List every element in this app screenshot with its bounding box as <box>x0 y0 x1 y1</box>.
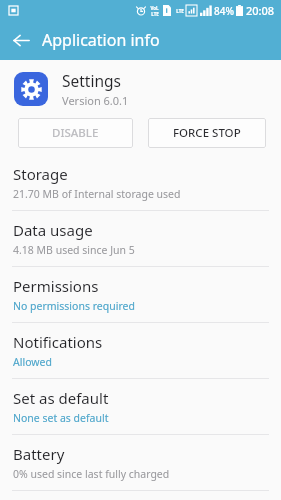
button[interactable]: Data usage <box>0 211 281 266</box>
staticText: Version 6.0.1 <box>62 93 129 108</box>
staticText: No permissions required <box>13 299 135 313</box>
staticText: 4.18 MB used since Jun 5 <box>13 243 135 257</box>
staticText: 21.70 MB of Internal storage used <box>13 187 181 201</box>
staticText: Settings <box>62 70 121 91</box>
staticText: LTE <box>151 11 159 17</box>
staticText: Set as default <box>13 388 109 408</box>
staticText: VoL <box>150 5 159 11</box>
staticText: 0% used since last fully charged <box>13 467 170 481</box>
button[interactable]: Set as default <box>0 379 281 434</box>
staticText: DISABLE <box>52 125 99 141</box>
button[interactable]: Navigate up <box>6 25 36 55</box>
button[interactable]: Storage <box>0 155 281 210</box>
staticText: Allowed <box>13 355 52 369</box>
staticText: 20:08 <box>246 3 275 18</box>
staticText: Storage <box>13 164 68 184</box>
staticText: Notifications <box>13 332 103 352</box>
staticText: Permissions <box>13 276 99 296</box>
staticText: Application info <box>42 29 160 51</box>
button[interactable]: Battery <box>0 435 281 490</box>
button[interactable]: Permissions <box>0 267 281 322</box>
staticText: Data usage <box>13 220 93 240</box>
staticText: LTE <box>176 8 184 14</box>
staticText: FORCE STOP <box>173 125 241 141</box>
button[interactable]: FORCE STOP <box>148 118 266 148</box>
button[interactable]: Notifications <box>0 323 281 378</box>
button[interactable]: DISABLE <box>18 118 133 148</box>
staticText: Battery <box>13 444 65 464</box>
staticText: None set as default <box>13 411 109 425</box>
staticText: 84% <box>214 4 234 18</box>
